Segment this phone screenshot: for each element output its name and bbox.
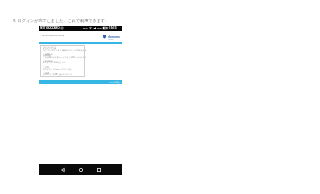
button[interactable]: Home	[72, 164, 90, 175]
staticText: 9. ログインが完了しました。これで利用できます。	[13, 18, 110, 24]
staticText: ご注意	[43, 66, 50, 69]
staticText: 継続ログインの設定をする	[63, 49, 87, 51]
button[interactable]: Recents	[90, 164, 108, 175]
staticText: docomo	[108, 35, 120, 39]
staticText: dアカウントのID/パスワードは	[43, 68, 72, 71]
staticText: id.smt.docomo.ne.jp	[42, 34, 65, 37]
staticText: NTT DOCOMO	[40, 26, 60, 30]
staticText: 48%	[97, 27, 102, 30]
staticText: dアカウントID	[43, 47, 57, 50]
staticText: 15:13	[109, 26, 117, 30]
button[interactable]: Back	[54, 164, 72, 175]
staticText: 88.5	[83, 27, 88, 30]
staticText: ご利用内容	[43, 53, 53, 55]
staticText: docomo	[108, 39, 114, 41]
staticText: ログイン完了しました	[43, 49, 64, 52]
staticText: ログイン中です	[43, 46, 57, 48]
staticText: お客様情報	[43, 60, 53, 62]
staticText: ページの先頭へ	[109, 81, 121, 83]
staticText: ご確認	[43, 72, 50, 75]
staticText: dアカウント設定はこちら	[43, 61, 66, 64]
staticText: サービスご利用にはdアカウント	[43, 73, 73, 76]
staticText: 会員情報	[43, 54, 51, 56]
staticText: この状態のまま各サービスをご利用いただけます	[43, 56, 87, 58]
